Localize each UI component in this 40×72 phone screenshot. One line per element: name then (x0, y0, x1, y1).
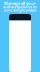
staticText: Manage all your (4, 2, 36, 5)
staticText: one single place (4, 8, 36, 12)
staticText: subscriptions in (3, 5, 37, 8)
